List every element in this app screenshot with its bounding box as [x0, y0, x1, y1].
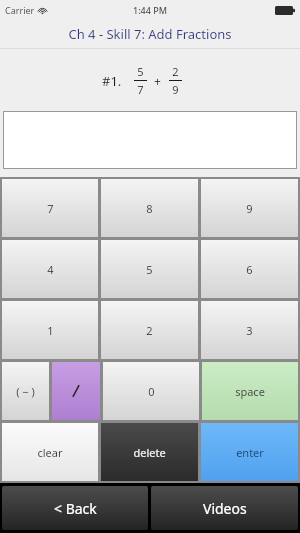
staticText: delete: [133, 445, 166, 460]
button[interactable]: 9: [201, 179, 298, 237]
staticText: 0: [148, 384, 155, 399]
button[interactable]: 0: [103, 362, 199, 420]
staticText: 3: [246, 323, 253, 338]
button[interactable]: 4: [2, 240, 98, 298]
button[interactable]: delete: [101, 423, 198, 481]
staticText: #1.: [102, 72, 122, 90]
staticText: 7: [47, 201, 54, 216]
staticText: 9: [246, 201, 253, 216]
button[interactable]: 2: [101, 301, 198, 359]
button[interactable]: clear: [2, 423, 98, 481]
staticText: 4: [47, 262, 54, 277]
staticText: 2: [172, 64, 179, 79]
staticText: 5: [137, 64, 144, 79]
staticText: ( − ): [16, 384, 35, 399]
staticText: < Back: [54, 499, 97, 518]
staticText: Carrier: [5, 4, 35, 16]
staticText: +: [154, 73, 161, 89]
button[interactable]: enter: [201, 423, 298, 481]
button[interactable]: 8: [101, 179, 198, 237]
button[interactable]: [52, 362, 100, 420]
button[interactable]: space: [202, 362, 298, 420]
staticText: Videos: [203, 499, 247, 518]
staticText: enter: [236, 445, 264, 460]
button[interactable]: ( − ): [2, 362, 49, 420]
button[interactable]: 7: [2, 179, 98, 237]
button[interactable]: 5: [101, 240, 198, 298]
staticText: 2: [146, 323, 153, 338]
staticText: 6: [246, 262, 253, 277]
staticText: 1: [47, 323, 54, 338]
staticText: 8: [146, 201, 153, 216]
button[interactable]: 1: [2, 301, 98, 359]
staticText: Ch 4 - Skill 7: Add Fractions: [68, 25, 232, 43]
staticText: space: [235, 384, 265, 399]
button[interactable]: 3: [201, 301, 298, 359]
staticText: 7: [137, 82, 144, 97]
staticText: 1:44 PM: [133, 4, 167, 16]
button[interactable]: Videos: [151, 486, 298, 530]
button[interactable]: < Back: [2, 486, 148, 530]
staticText: clear: [37, 445, 63, 460]
staticText: 5: [146, 262, 153, 277]
button[interactable]: 6: [201, 240, 298, 298]
staticText: 9: [172, 82, 179, 97]
button[interactable]: [3, 111, 297, 169]
